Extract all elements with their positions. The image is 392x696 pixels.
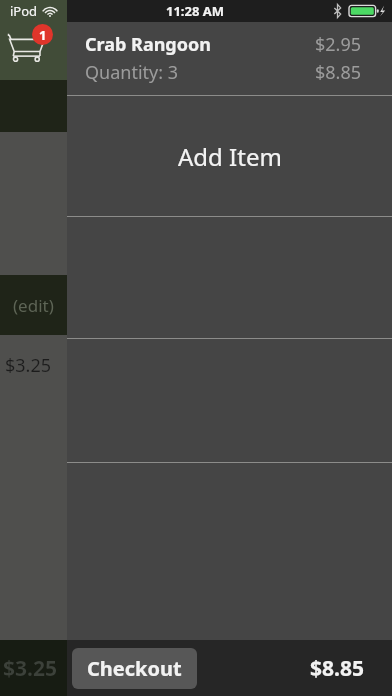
staticText: $8.85	[310, 654, 364, 683]
button[interactable]: Checkout	[72, 648, 197, 689]
staticText: (edit)	[13, 294, 54, 317]
staticText: Checkout	[87, 655, 182, 682]
staticText: $3.25	[2, 655, 51, 681]
button[interactable]: Add Item	[67, 96, 392, 216]
staticText: $8.85	[315, 60, 362, 85]
button[interactable]: Crab Rangoon	[67, 22, 392, 95]
staticText: Add Item	[178, 140, 282, 173]
staticText: Crab Rangoon	[85, 32, 211, 57]
staticText: $3.25	[5, 353, 52, 378]
button[interactable]: Cart	[0, 0, 67, 80]
staticText: 1	[39, 26, 47, 44]
staticText: iPod	[10, 2, 38, 20]
staticText: $3.25	[3, 654, 57, 683]
staticText: 11:28 AM	[166, 2, 225, 20]
staticText: $2.95	[315, 32, 362, 57]
button[interactable]: (edit)	[0, 275, 67, 335]
staticText: Quantity: 3	[85, 60, 179, 85]
button[interactable]	[67, 463, 392, 696]
